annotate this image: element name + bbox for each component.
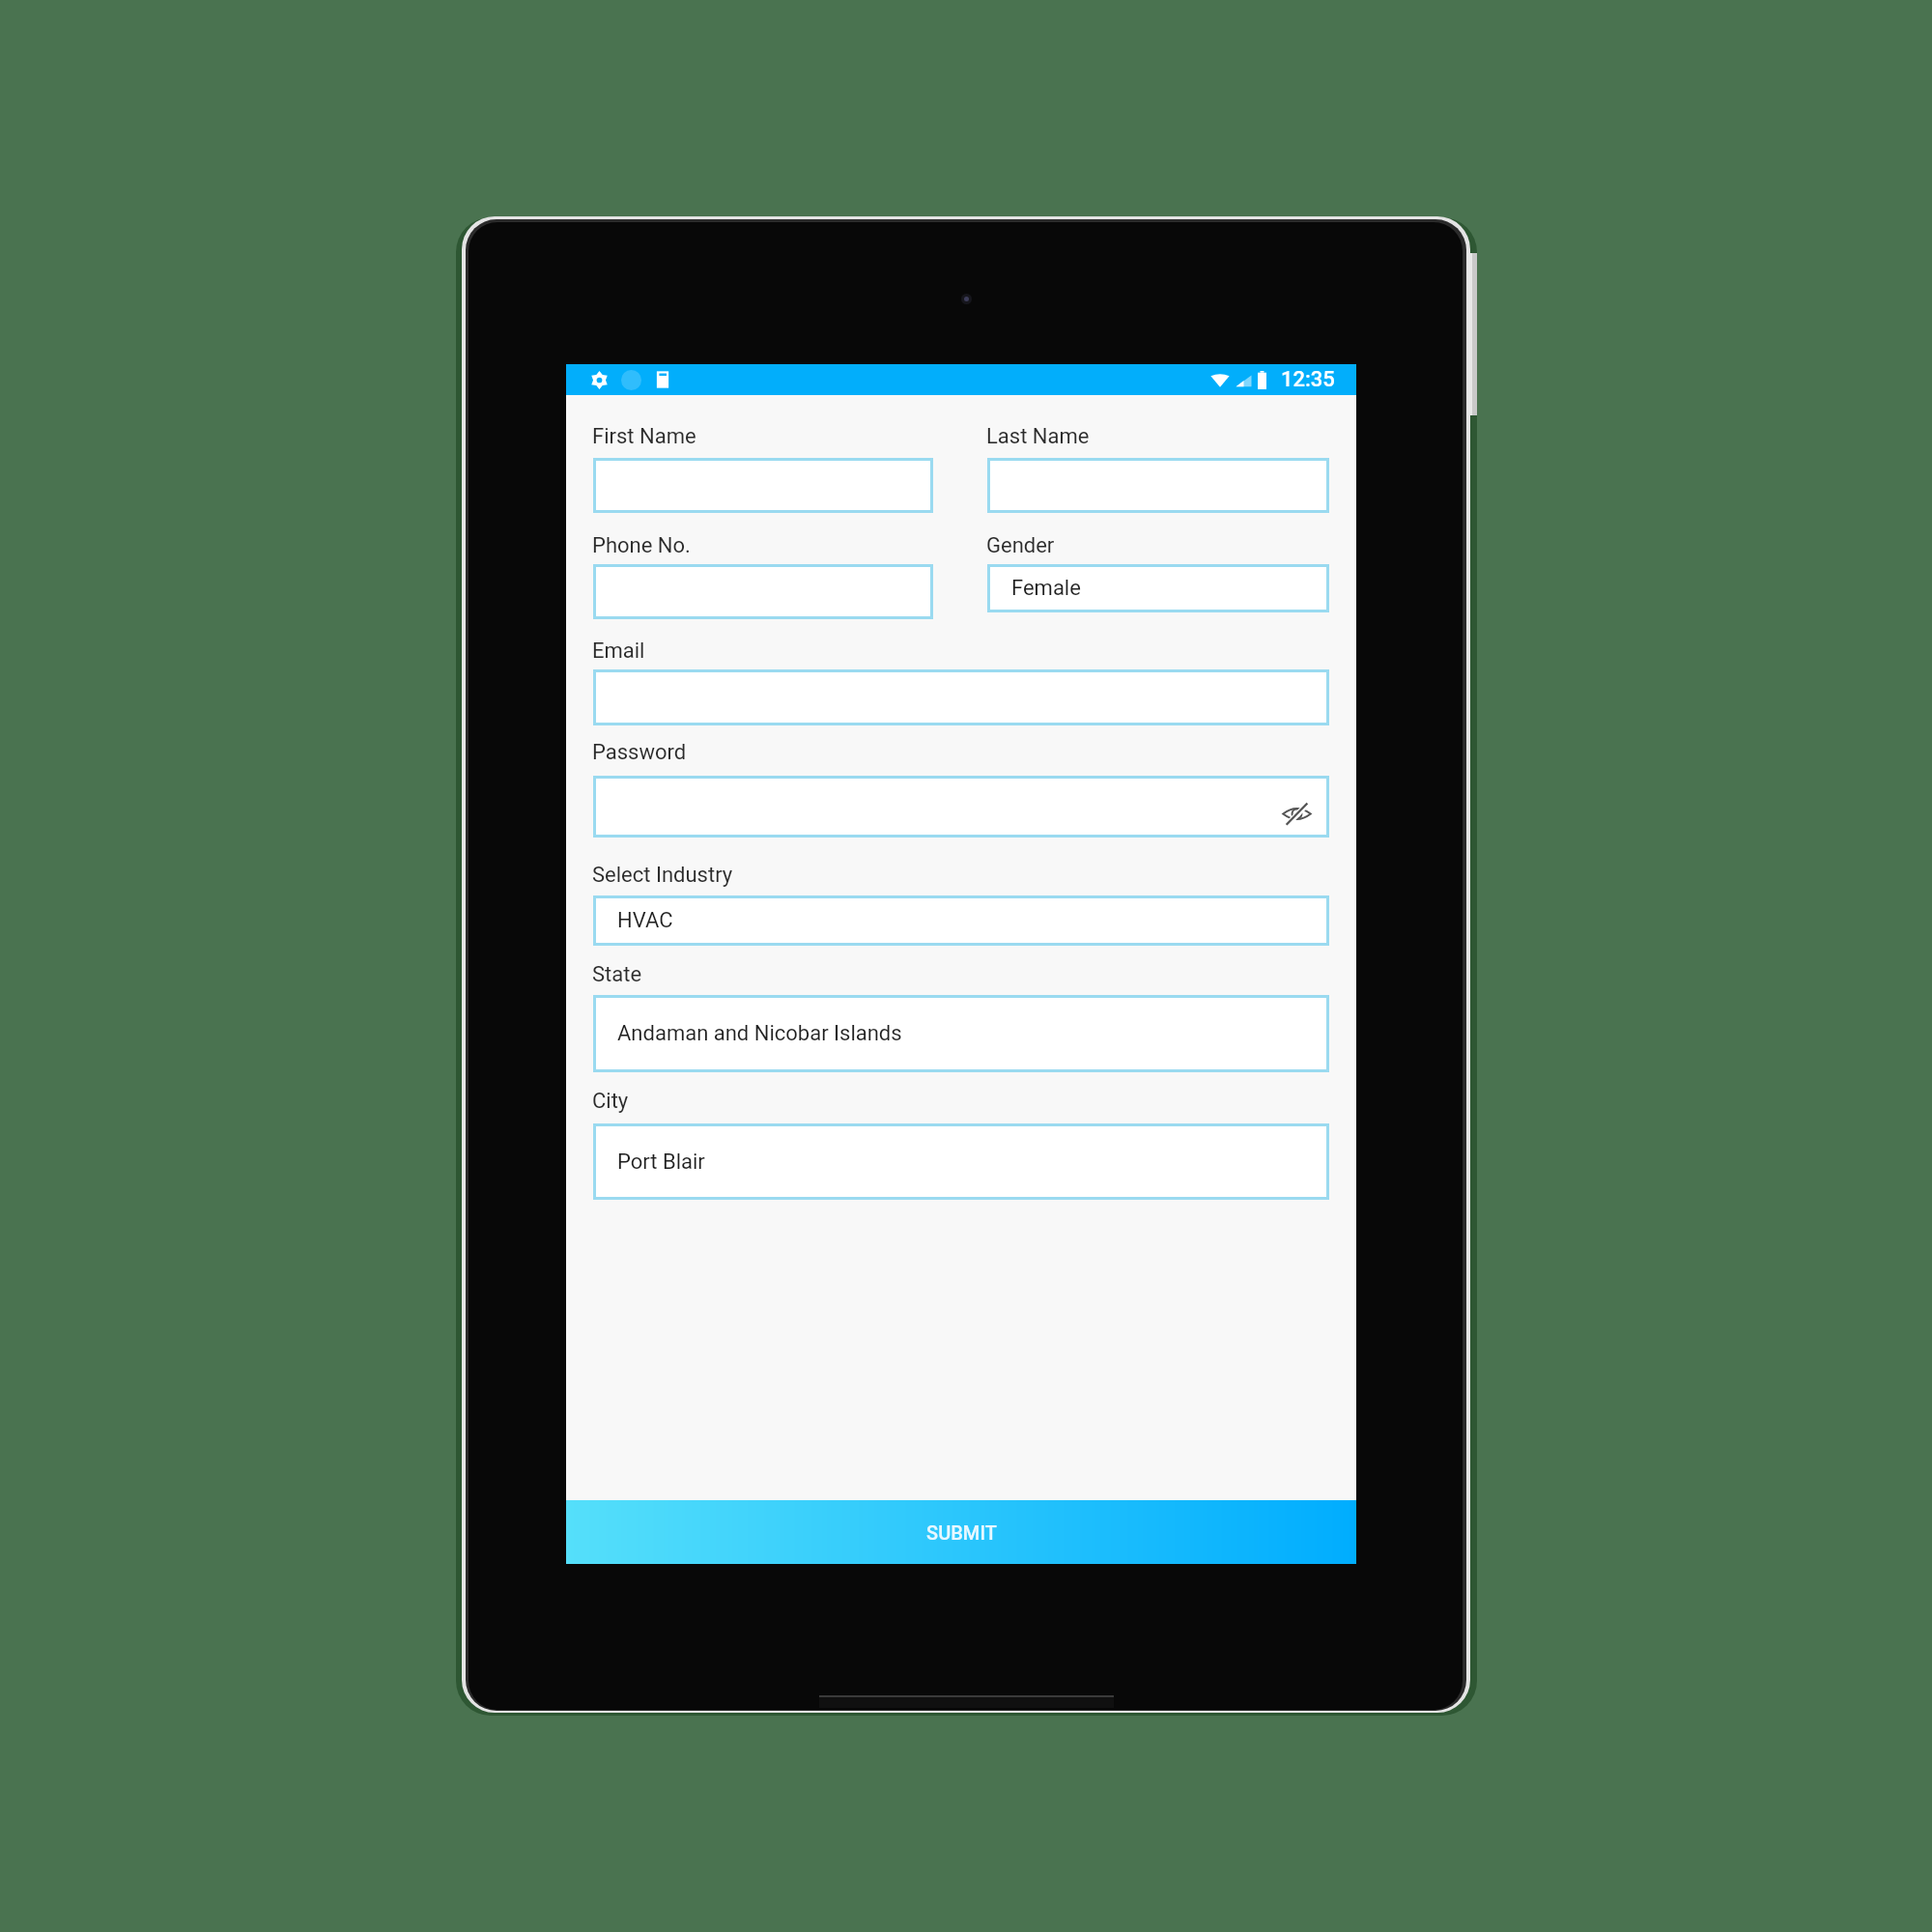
button[interactable]: [987, 458, 1329, 513]
staticText: 12:35: [1281, 367, 1335, 392]
button[interactable]: [593, 776, 1329, 838]
button[interactable]: Document: [652, 369, 673, 390]
staticText: Female: [1011, 576, 1081, 601]
staticText: State: [592, 962, 642, 987]
staticText: HVAC: [617, 908, 673, 933]
staticText: SUBMIT: [926, 1521, 997, 1544]
button[interactable]: [593, 669, 1329, 725]
button[interactable]: Port Blair: [593, 1123, 1329, 1200]
staticText: Port Blair: [617, 1150, 705, 1175]
button[interactable]: [593, 564, 933, 619]
staticText: Gender: [986, 533, 1055, 558]
staticText: Andaman and Nicobar Islands: [617, 1021, 902, 1046]
button[interactable]: Andaman and Nicobar Islands: [593, 995, 1329, 1072]
staticText: Phone No.: [592, 533, 691, 558]
button[interactable]: Notification: [620, 369, 641, 390]
staticText: First Name: [592, 424, 696, 449]
staticText: Select Industry: [592, 863, 733, 888]
staticText: Email: [592, 639, 645, 664]
staticText: City: [592, 1089, 629, 1114]
button[interactable]: Female: [987, 564, 1329, 612]
button[interactable]: SUBMIT: [566, 1500, 1356, 1564]
button[interactable]: HVAC: [593, 895, 1329, 946]
staticText: Password: [592, 740, 687, 765]
button[interactable]: Toggle password visibility: [1275, 788, 1318, 838]
staticText: Last Name: [986, 424, 1090, 449]
button[interactable]: Settings: [588, 369, 610, 390]
button[interactable]: [593, 458, 933, 513]
